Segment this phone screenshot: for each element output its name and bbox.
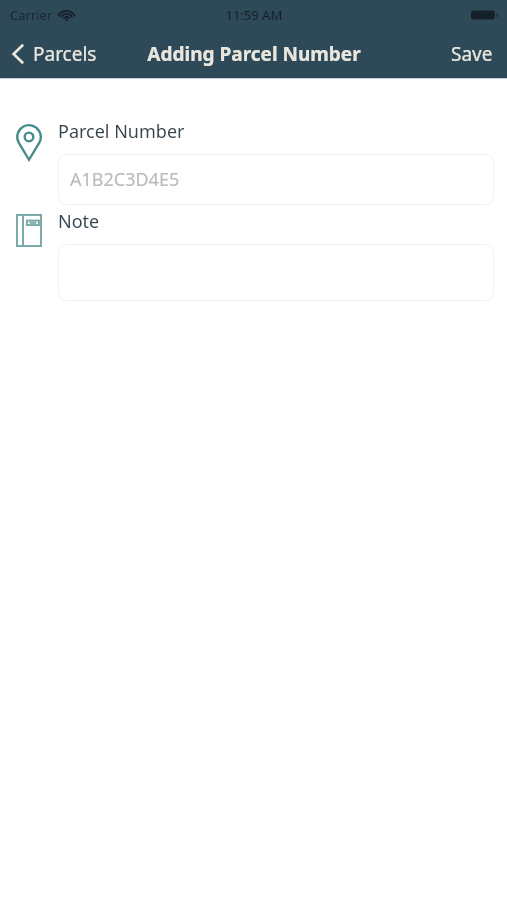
button[interactable]: A1B2C3D4E5 bbox=[58, 154, 494, 205]
other: Note bbox=[14, 214, 44, 254]
button[interactable]: Save bbox=[437, 30, 507, 78]
staticText: Save bbox=[451, 41, 493, 67]
button[interactable]: Parcels bbox=[0, 30, 107, 78]
staticText: A1B2C3D4E5 bbox=[70, 167, 180, 192]
other: Location bbox=[14, 124, 44, 164]
staticText: Adding Parcel Number bbox=[147, 41, 361, 67]
staticText: Parcel Number bbox=[58, 119, 185, 144]
staticText: Parcels bbox=[33, 41, 97, 67]
staticText: Note bbox=[58, 209, 100, 234]
staticText: Carrier bbox=[10, 6, 53, 24]
staticText: 11:59 AM bbox=[225, 6, 283, 24]
